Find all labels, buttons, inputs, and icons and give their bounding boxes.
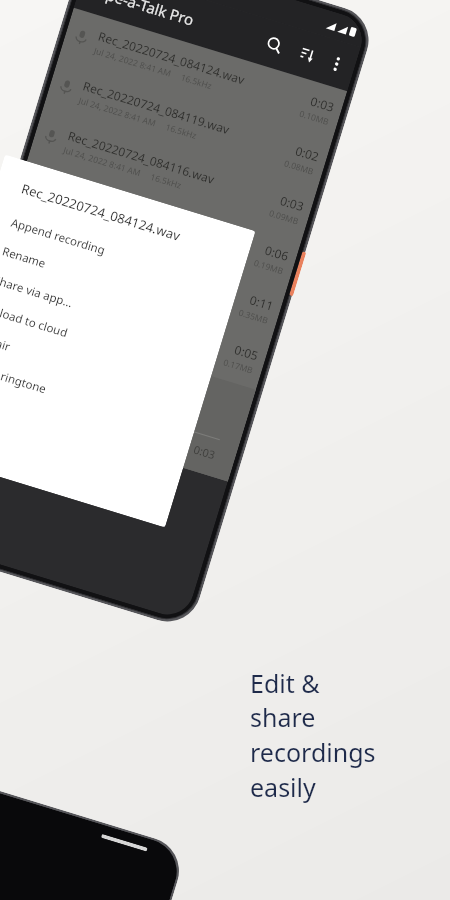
button[interactable]: Rec_20220724_084052.wav (0, 256, 271, 390)
staticText: Rec_20220724_084101.wav (36, 226, 187, 286)
staticText: Rec_20220724_084110.wav (51, 177, 202, 237)
staticText: Rename (0, 243, 48, 272)
button[interactable]: Search (253, 24, 296, 66)
staticText: Rec_20220724_084052.wav (20, 276, 171, 336)
staticText: 0:05 (233, 341, 260, 363)
staticText: 0:03 (278, 192, 306, 214)
button[interactable]: Set as ringtone (0, 351, 188, 446)
staticText: Tape-a-Talk Pro (89, 0, 197, 30)
staticText: Rec_20220724_084124.wav (38, 359, 177, 414)
staticText: 16.5kHz (134, 221, 168, 241)
button[interactable]: Repair (0, 323, 197, 417)
staticText: Jul 24, 2022 8:41 AM (62, 144, 143, 179)
staticText: Jul 24, 2022 8:41 AM (47, 194, 128, 229)
button[interactable]: Share via app… (0, 265, 214, 360)
staticText: 0:06 (263, 242, 291, 264)
staticText: Rec_20220724_084124.wav (96, 28, 247, 88)
staticText: Share via app… (0, 272, 75, 311)
staticText: 0.17MB (222, 356, 255, 377)
button[interactable]: More options (319, 47, 354, 82)
staticText: Upload to cloud (0, 301, 70, 341)
staticText: 0:03 (192, 441, 217, 462)
staticText: 16.5kHz (164, 121, 198, 142)
staticText: 0.08MB (283, 157, 316, 178)
staticText: Edit & share recordings easily (250, 666, 376, 805)
button[interactable]: Sort (286, 34, 328, 76)
staticText: 16.5kHz (149, 171, 183, 192)
button[interactable]: Upload to cloud (0, 294, 206, 389)
staticText: Jul 24, 2022 8:41 AM (92, 45, 173, 80)
staticText: 16.5kHz (179, 71, 213, 92)
staticText: Append recording (9, 215, 107, 259)
staticText: 0.09MB (267, 207, 301, 228)
staticText: Jul 24, 2022 8:40 AM (16, 293, 97, 329)
staticText: Rec_20220724_084116.wav (66, 127, 217, 187)
staticText: Rec_20220724_084119.wav (81, 77, 232, 137)
button[interactable]: Rec_20220724_084110.wav (13, 157, 302, 290)
staticText: Repair (0, 329, 12, 355)
staticText: 0:03 (309, 92, 336, 115)
staticText: Jul 24, 2022 8:41 AM (77, 94, 158, 130)
button[interactable]: Rename (0, 237, 223, 331)
staticText: 0:02 (293, 142, 321, 164)
button[interactable]: Rec_20220724_084124.wav (58, 8, 347, 141)
button[interactable]: Append recording (7, 208, 232, 303)
staticText: Rec_20220724_084124.wav (19, 179, 182, 245)
staticText: 0.10MB (298, 108, 331, 128)
staticText: Set as ringtone (0, 358, 48, 397)
button[interactable]: Rec_20220724_084101.wav (0, 207, 286, 340)
staticText: Jul 24, 2022 8:41 AM (31, 244, 112, 279)
staticText: 0.19MB (252, 257, 285, 277)
staticText: 0:11 (248, 291, 275, 314)
staticText: 0.35MB (237, 307, 270, 327)
button[interactable]: Rec_20220724_084119.wav (43, 57, 332, 191)
button[interactable]: Rec_20220724_084116.wav (28, 107, 317, 240)
